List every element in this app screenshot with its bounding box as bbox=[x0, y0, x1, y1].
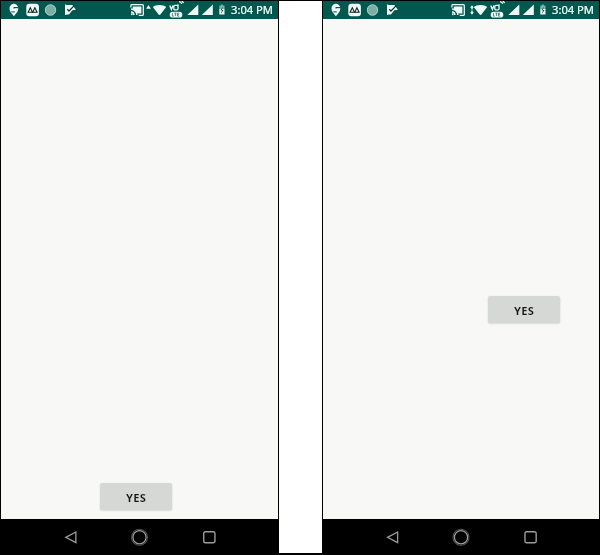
button[interactable]: YES bbox=[100, 483, 172, 510]
button[interactable]: Home bbox=[415, 519, 507, 554]
button[interactable]: Recent apps bbox=[186, 519, 278, 554]
button[interactable]: Back bbox=[1, 519, 93, 554]
button[interactable]: Back bbox=[323, 519, 415, 554]
button[interactable]: Home bbox=[94, 519, 186, 554]
button[interactable]: Recent apps bbox=[507, 519, 599, 554]
staticText: 3:04 PM bbox=[231, 2, 274, 17]
staticText: YES bbox=[514, 303, 535, 318]
button[interactable]: YES bbox=[488, 296, 560, 323]
staticText: YES bbox=[126, 490, 147, 505]
staticText: 3:04 PM bbox=[552, 2, 595, 17]
